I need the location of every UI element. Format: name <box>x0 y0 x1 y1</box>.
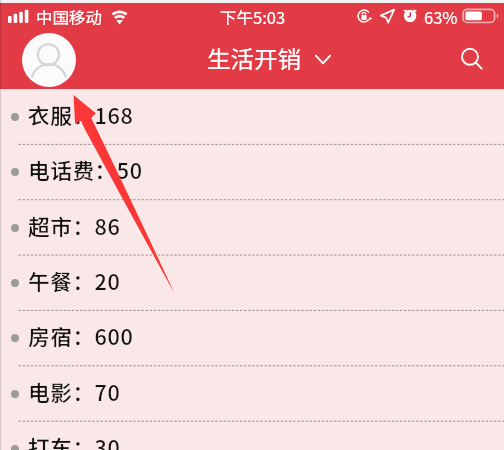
staticText: 下午5:03 <box>220 5 286 29</box>
button[interactable]: 衣服：168 <box>0 89 504 144</box>
staticText: 超市：86 <box>28 210 121 241</box>
button[interactable]: 房宿：600 <box>0 310 504 365</box>
button[interactable]: 电影：70 <box>0 366 504 421</box>
staticText: 衣服：168 <box>28 99 134 130</box>
button[interactable]: 午餐：20 <box>0 255 504 310</box>
staticText: 午餐：20 <box>28 265 121 296</box>
staticText: 打车：30 <box>28 431 121 450</box>
button[interactable]: 超市：86 <box>0 200 504 255</box>
staticText: 生活开销 <box>207 41 301 75</box>
button[interactable]: Profile <box>22 33 76 87</box>
staticText: 电话费：50 <box>28 154 143 185</box>
button[interactable]: 生活开销 <box>207 41 332 75</box>
button[interactable]: 电话费：50 <box>0 144 504 199</box>
button[interactable]: 打车：30 <box>0 421 504 450</box>
staticText: 电影：70 <box>28 376 121 407</box>
staticText: 中国移动 <box>36 5 102 29</box>
staticText: 房宿：600 <box>28 320 134 351</box>
staticText: 63% <box>424 5 458 29</box>
button[interactable]: Search <box>450 38 490 78</box>
